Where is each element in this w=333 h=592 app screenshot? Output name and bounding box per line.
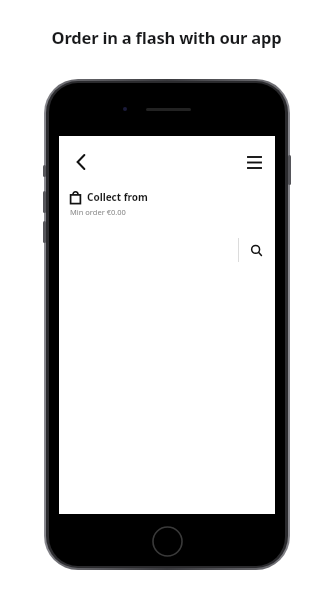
staticText: Order in a flash with our app [8,26,325,48]
staticText: Min order €0.00 [70,207,126,217]
staticText: Collect from [87,190,148,204]
button[interactable]: Collect from [59,188,275,217]
button[interactable]: Back [63,144,99,180]
button[interactable]: Menu [236,144,272,180]
button[interactable]: Search [239,237,273,263]
